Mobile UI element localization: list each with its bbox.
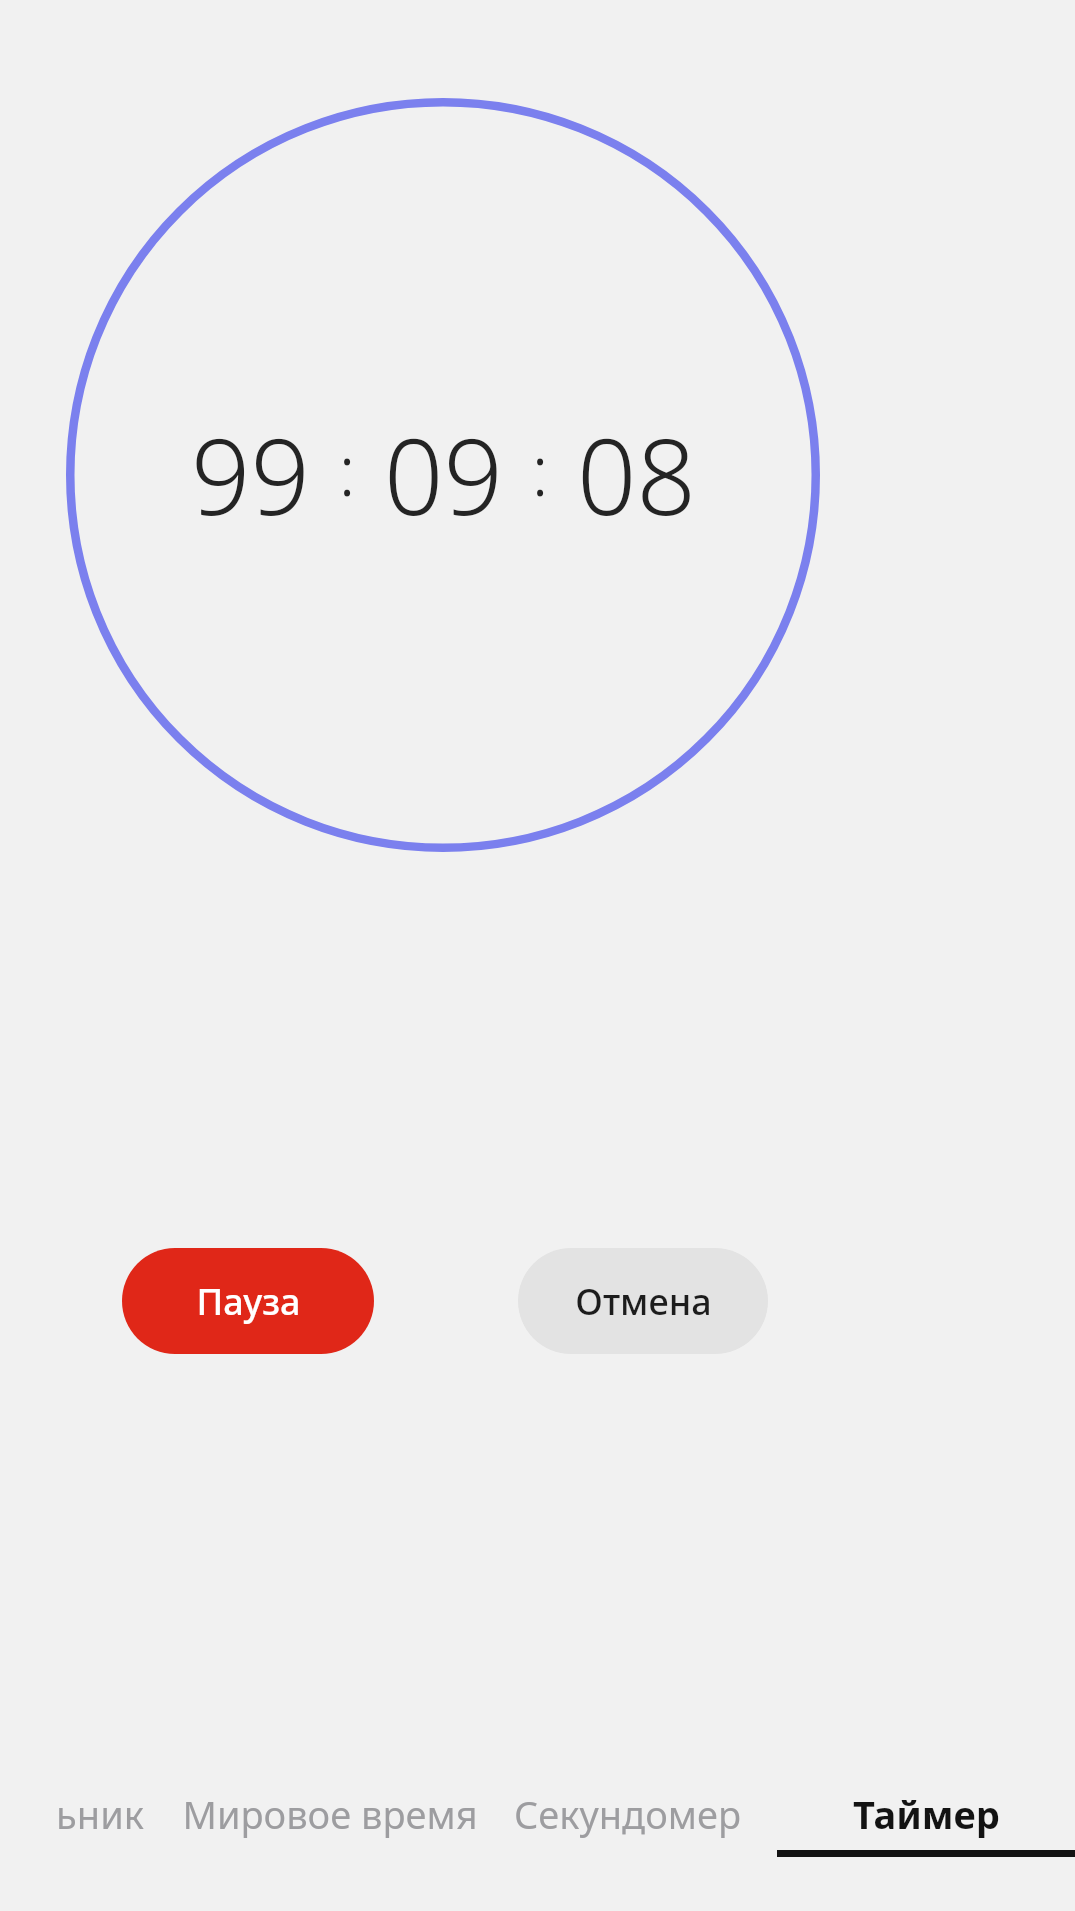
- staticText: Мировое время: [182, 1788, 478, 1840]
- button[interactable]: Секундомер: [514, 1788, 741, 1840]
- button[interactable]: ьник: [56, 1788, 144, 1840]
- staticText: 99: [191, 404, 310, 546]
- button[interactable]: Отмена: [518, 1248, 768, 1354]
- staticText: Таймер: [853, 1788, 1000, 1840]
- staticText: Отмена: [575, 1277, 712, 1326]
- button[interactable]: Мировое время: [182, 1788, 478, 1840]
- staticText: :: [338, 421, 356, 516]
- staticText: Пауза: [196, 1277, 301, 1326]
- staticText: ьник: [56, 1788, 144, 1840]
- button[interactable]: Таймер: [777, 1788, 1075, 1857]
- staticText: Секундомер: [514, 1788, 741, 1840]
- staticText: 09: [384, 404, 503, 546]
- staticText: 08: [577, 404, 696, 546]
- staticText: :: [531, 421, 549, 516]
- button[interactable]: Пауза: [122, 1248, 374, 1354]
